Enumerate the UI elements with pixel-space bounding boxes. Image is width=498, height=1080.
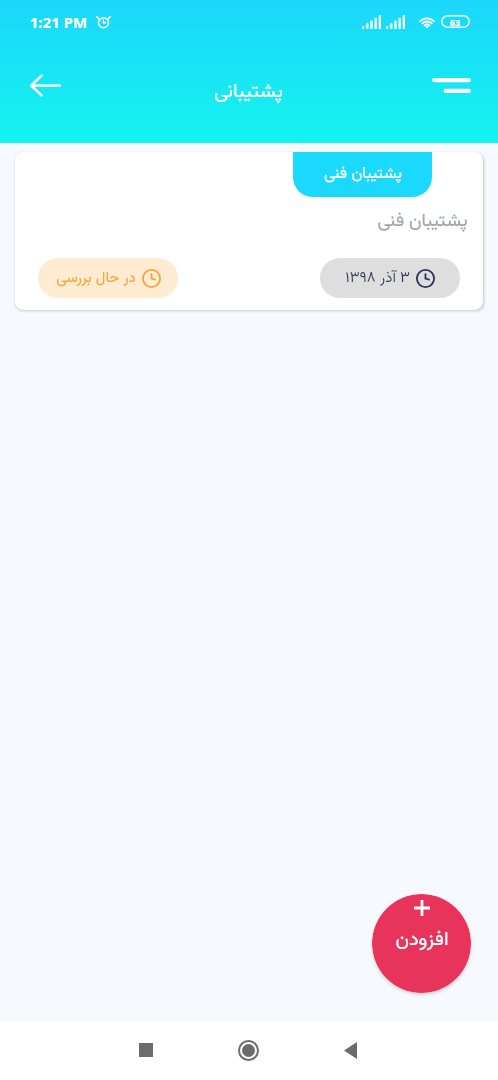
staticText: پشتیبان فنی bbox=[324, 162, 402, 187]
button[interactable]: افزودن bbox=[372, 894, 471, 993]
staticText: پشتیبانی bbox=[214, 76, 283, 107]
staticText: ۱۳۹۸ bbox=[345, 267, 376, 290]
staticText: ۳ bbox=[400, 267, 410, 290]
button[interactable]: Back bbox=[19, 63, 71, 107]
button[interactable]: ۱۳۹۸ bbox=[320, 258, 460, 298]
staticText: در حال بررسی bbox=[56, 267, 136, 290]
button[interactable]: Home bbox=[220, 1022, 276, 1078]
button[interactable]: Back bbox=[322, 1022, 378, 1078]
staticText: پشتیبان فنی bbox=[377, 207, 468, 236]
button[interactable]: در حال بررسی bbox=[38, 258, 178, 298]
staticText: 63 bbox=[450, 16, 461, 28]
button[interactable]: Recents bbox=[118, 1022, 174, 1078]
staticText: 1:21 PM bbox=[30, 12, 88, 32]
button[interactable]: پشتیبان فنی bbox=[15, 152, 483, 310]
staticText: آذر bbox=[380, 267, 396, 290]
button[interactable]: Menu bbox=[423, 62, 479, 108]
staticText: افزودن bbox=[395, 924, 449, 955]
